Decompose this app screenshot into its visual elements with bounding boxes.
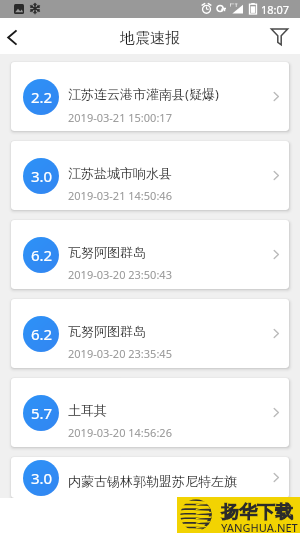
- staticText: 6.2: [31, 245, 53, 265]
- button[interactable]: Back: [0, 18, 34, 54]
- button[interactable]: 3.0: [11, 141, 289, 210]
- staticText: 2019-03-21 14:50:46: [68, 188, 172, 203]
- staticText: YANGHUA.NET: [221, 520, 298, 533]
- staticText: 2019-03-20 14:56:26: [68, 425, 172, 440]
- button[interactable]: Filter: [266, 18, 300, 54]
- staticText: 瓦努阿图群岛: [68, 323, 146, 339]
- button[interactable]: 5.7: [11, 378, 289, 447]
- staticText: 6.2: [31, 324, 53, 344]
- staticText: 江苏连云港市灌南县(疑爆): [68, 85, 219, 103]
- staticText: 2019-03-21 15:00:17: [68, 110, 172, 125]
- staticText: 瓦努阿图群岛: [68, 244, 146, 260]
- button[interactable]: 6.2: [11, 220, 289, 289]
- staticText: 18:07: [261, 2, 290, 17]
- staticText: 内蒙古锡林郭勒盟苏尼特左旗: [68, 473, 237, 489]
- staticText: 5.7: [31, 403, 53, 423]
- button[interactable]: 6.2: [11, 299, 289, 368]
- staticText: 2019-03-20 23:50:43: [68, 267, 172, 282]
- staticText: 2019-03-20 23:35:45: [68, 346, 172, 361]
- staticText: 土耳其: [68, 402, 107, 418]
- staticText: 2.2: [31, 87, 53, 107]
- staticText: 3.0: [31, 468, 53, 488]
- staticText: 扬华下载: [221, 501, 293, 524]
- staticText: 江苏盐城市响水县: [68, 165, 172, 181]
- staticText: 3.0: [31, 166, 53, 186]
- button[interactable]: 2.2: [11, 62, 289, 131]
- button[interactable]: 3.0: [11, 457, 289, 498]
- staticText: 地震速报: [120, 29, 180, 48]
